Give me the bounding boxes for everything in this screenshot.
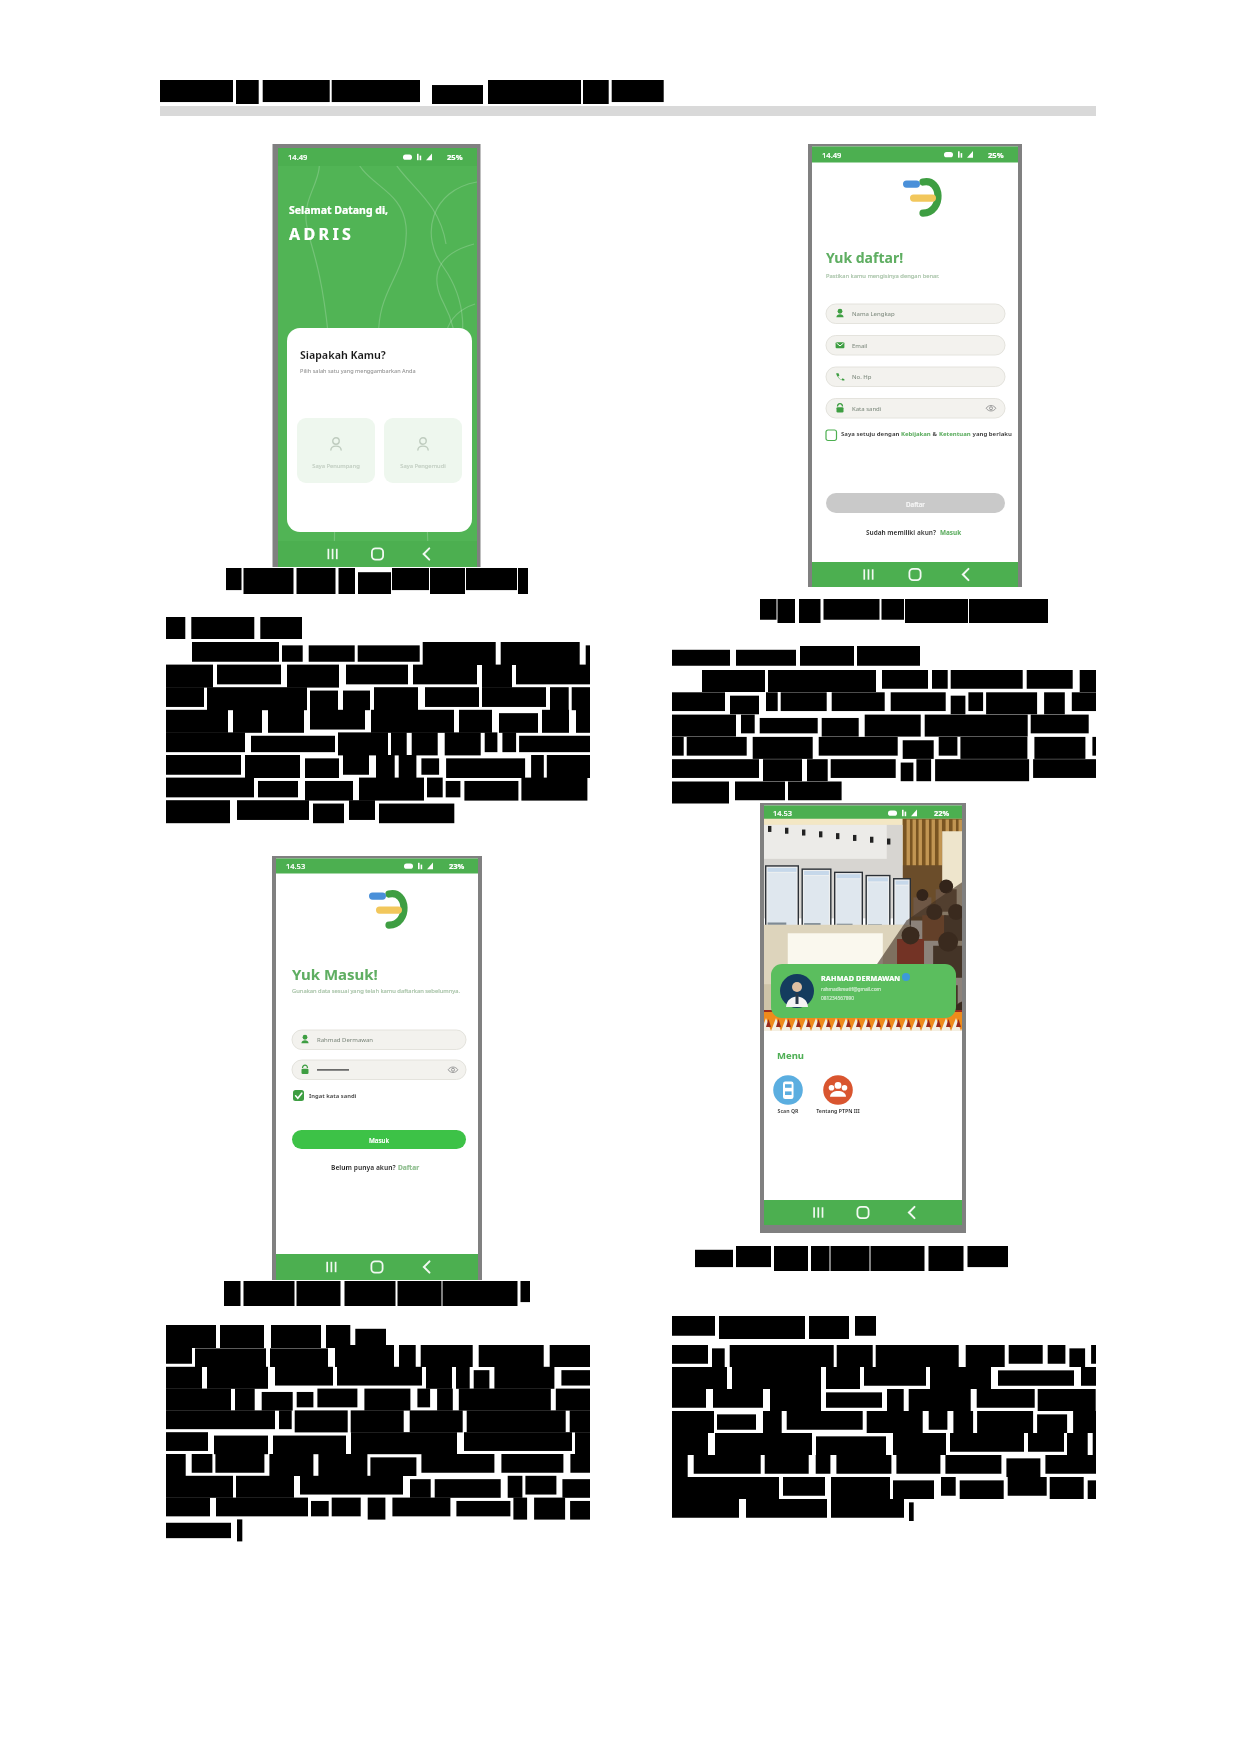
staticText: Ketentuan (939, 430, 971, 438)
button[interactable]: Back (412, 541, 440, 567)
staticText: Menu (777, 1049, 804, 1062)
staticText: Daftar (826, 500, 1005, 508)
staticText: Saya Penumpang (297, 462, 375, 470)
staticText: Masuk (940, 528, 962, 537)
button[interactable]: Saya setuju dengan (826, 428, 1006, 443)
button[interactable]: Show password (443, 1062, 463, 1078)
button[interactable]: Recent apps (854, 562, 882, 587)
staticText: Daftar (398, 1163, 420, 1172)
button[interactable]: Recent apps (317, 1254, 345, 1280)
button[interactable]: Home (363, 1254, 391, 1280)
button[interactable]: Home (901, 562, 929, 587)
button[interactable]: No. Hp (826, 367, 1005, 387)
button[interactable]: Masuk (940, 528, 962, 537)
button[interactable]: Masuk (292, 1130, 466, 1149)
staticText: Masuk (292, 1136, 466, 1145)
staticText: No. Hp (852, 373, 872, 381)
button[interactable]: Email (826, 336, 1005, 356)
staticText: yang berlaku (971, 430, 1012, 438)
staticText: 23% (449, 861, 465, 871)
staticText: Belum punya akun? (331, 1163, 398, 1172)
staticText: & (931, 430, 939, 438)
button[interactable]: Back (898, 1200, 926, 1225)
staticText: rahmadkreatif@gmail.com (821, 986, 882, 993)
staticText: Selamat Datang di, (289, 203, 389, 217)
staticText: Scan QR (770, 1107, 806, 1114)
staticText: 14.49 (288, 152, 308, 162)
staticText: Saya setuju dengan (841, 430, 901, 438)
button[interactable]: Back (951, 562, 979, 587)
staticText: 25% (988, 150, 1004, 160)
button[interactable]: Ingat kata sandi (292, 1088, 372, 1103)
button[interactable]: Saya Pengemudi (384, 418, 462, 483)
staticText: 081234567890 (821, 995, 854, 1002)
staticText: Yuk daftar! (826, 248, 904, 267)
button[interactable]: Back (412, 1254, 440, 1280)
button[interactable]: Nama Lengkap (826, 304, 1005, 324)
button[interactable]: Scan QR (770, 1073, 806, 1115)
button[interactable]: Saya Penumpang (297, 418, 375, 483)
staticText: Kata sandi (852, 405, 882, 413)
staticText: Sudah memiliki akun? (866, 528, 940, 537)
button[interactable]: Home (849, 1200, 877, 1225)
button[interactable]: Recent apps (803, 1200, 831, 1225)
button[interactable]: Kata sandi (826, 399, 1005, 419)
staticText: Nama Lengkap (852, 310, 895, 318)
staticText: RAHMAD DERMAWAN (821, 973, 901, 983)
staticText: Tentang PTPN III (812, 1107, 864, 1114)
staticText: 25% (447, 152, 463, 162)
button[interactable]: Recent apps (318, 541, 346, 567)
staticText: 14.53 (773, 808, 792, 818)
staticText: Gunakan data sesuai yang telah kamu daft… (292, 987, 461, 995)
staticText: ADRIS (289, 223, 355, 245)
staticText: Rahmad Dermawan (317, 1036, 374, 1044)
button[interactable]: Tentang PTPN III (812, 1073, 864, 1115)
button[interactable]: Show password (981, 401, 1001, 417)
button[interactable]: Daftar (826, 493, 1005, 513)
button[interactable]: RAHMAD DERMAWAN (771, 964, 956, 1018)
button[interactable]: Daftar (398, 1163, 420, 1172)
staticText: Saya Pengemudi (384, 462, 462, 470)
staticText: Kebijakan (901, 430, 931, 438)
button[interactable] (292, 1060, 466, 1080)
staticText: Siapakah Kamu? (300, 348, 386, 362)
staticText: Ingat kata sandi (309, 1092, 357, 1100)
button[interactable]: Home (364, 541, 392, 567)
staticText: Pilih salah satu yang menggambarkan Anda (300, 367, 416, 375)
staticText: Yuk Masuk! (292, 964, 378, 984)
button[interactable]: Rahmad Dermawan (292, 1030, 466, 1050)
staticText: Pastikan kamu mengisinya dengan benar. (826, 272, 940, 280)
staticText: 14.53 (286, 861, 306, 871)
staticText: Email (852, 342, 868, 350)
staticText: 22% (934, 808, 950, 818)
staticText: 14.49 (822, 150, 842, 160)
